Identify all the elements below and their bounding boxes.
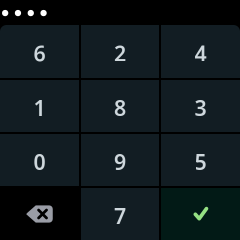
staticText: 6 [33,39,45,67]
staticText: 9 [114,147,126,176]
button[interactable]: Confirm [161,188,240,240]
button[interactable]: 8 [81,80,159,132]
staticText: 0 [33,147,45,176]
button[interactable]: 5 [161,134,240,186]
button[interactable]: 7 [81,188,159,240]
staticText: 2 [114,39,126,67]
button[interactable]: 0 [0,134,79,186]
button[interactable]: 3 [161,80,240,132]
staticText: 3 [194,93,206,122]
staticText: 8 [114,93,126,122]
button[interactable]: 9 [81,134,159,186]
staticText: 7 [114,201,126,230]
button[interactable]: Delete [0,188,79,240]
staticText: 5 [194,147,206,176]
button[interactable]: 6 [0,25,79,78]
button[interactable]: 4 [161,25,240,78]
staticText: 4 [194,39,206,67]
button[interactable]: 2 [81,25,159,78]
staticText: 1 [33,93,45,122]
button[interactable]: 1 [0,80,79,132]
